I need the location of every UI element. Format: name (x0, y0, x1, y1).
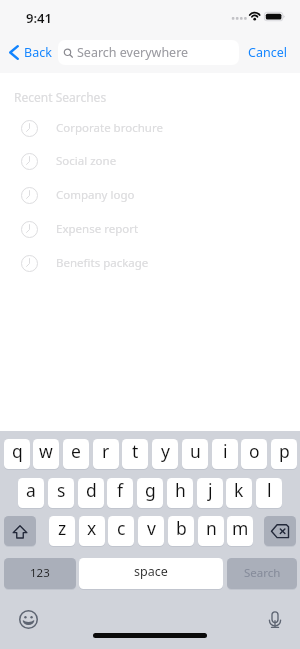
staticText: u (190, 439, 201, 463)
staticText: i (223, 439, 228, 463)
button[interactable]: n (198, 516, 224, 546)
staticText: Recent Searches (14, 89, 107, 105)
button[interactable]: Social zone (0, 144, 300, 178)
staticText: x (87, 516, 97, 540)
staticText: f (117, 478, 124, 502)
staticText: n (206, 516, 217, 540)
button[interactable]: w (33, 439, 59, 469)
button[interactable]: h (167, 478, 193, 508)
staticText: 9:41 (26, 9, 52, 27)
staticText: Social zone (56, 153, 117, 169)
staticText: c (117, 516, 126, 540)
button[interactable]: Emoji (19, 610, 38, 629)
staticText: j (208, 478, 213, 502)
staticText: p (279, 439, 290, 463)
button[interactable]: s (48, 478, 74, 508)
button[interactable]: Backspace (264, 516, 296, 546)
button[interactable]: f (107, 478, 133, 508)
button[interactable]: v (138, 516, 164, 546)
staticText: Search (244, 565, 281, 581)
staticText: Search everywhere (77, 44, 189, 61)
button[interactable]: o (241, 439, 267, 469)
staticText: 123 (30, 565, 50, 581)
staticText: Company logo (56, 187, 135, 203)
button[interactable]: z (49, 516, 75, 546)
staticText: d (86, 478, 97, 502)
button[interactable]: Back (9, 39, 52, 66)
staticText: g (145, 478, 156, 502)
button[interactable]: 123 (4, 558, 76, 589)
staticText: h (175, 478, 186, 502)
button[interactable]: d (78, 478, 104, 508)
button[interactable]: t (122, 439, 148, 469)
staticText: k (234, 478, 244, 502)
staticText: t (132, 439, 139, 463)
staticText: v (147, 516, 156, 540)
button[interactable]: j (197, 478, 223, 508)
button[interactable]: x (79, 516, 105, 546)
staticText: Corporate brochure (56, 120, 163, 136)
button[interactable]: c (108, 516, 134, 546)
staticText: e (71, 439, 81, 463)
button[interactable]: m (227, 516, 253, 546)
staticText: q (12, 439, 23, 463)
button[interactable]: l (256, 478, 282, 508)
button[interactable]: i (212, 439, 238, 469)
staticText: Back (24, 44, 52, 61)
staticText: m (232, 516, 249, 540)
button[interactable]: y (152, 439, 178, 469)
button[interactable]: Expense report (0, 212, 300, 246)
button[interactable]: g (137, 478, 163, 508)
staticText: o (249, 439, 260, 463)
button[interactable]: e (63, 439, 89, 469)
button[interactable]: Dictation (266, 611, 284, 629)
button[interactable]: r (93, 439, 119, 469)
staticText: s (57, 478, 66, 502)
button[interactable]: p (271, 439, 297, 469)
staticText: Cancel (248, 44, 287, 61)
button[interactable]: q (4, 439, 30, 469)
button[interactable]: Benefits package (0, 246, 300, 280)
staticText: Benefits package (56, 255, 149, 271)
button[interactable]: Company logo (0, 178, 300, 212)
staticText: b (176, 516, 187, 540)
staticText: space (134, 563, 168, 580)
button[interactable]: a (18, 478, 44, 508)
staticText: z (58, 516, 67, 540)
button[interactable]: space (79, 558, 223, 589)
staticText: w (39, 439, 53, 463)
button[interactable]: b (168, 516, 194, 546)
button[interactable]: u (182, 439, 208, 469)
button[interactable]: Search everywhere (58, 40, 239, 65)
staticText: l (267, 478, 272, 502)
button[interactable]: Corporate brochure (0, 111, 300, 145)
button[interactable]: Search (227, 558, 297, 589)
staticText: y (161, 439, 170, 463)
staticText: r (102, 439, 110, 463)
staticText: Expense report (56, 221, 139, 237)
button[interactable]: k (226, 478, 252, 508)
staticText: a (26, 478, 36, 502)
button[interactable]: Cancel (248, 39, 287, 66)
button[interactable]: Shift (4, 516, 36, 546)
